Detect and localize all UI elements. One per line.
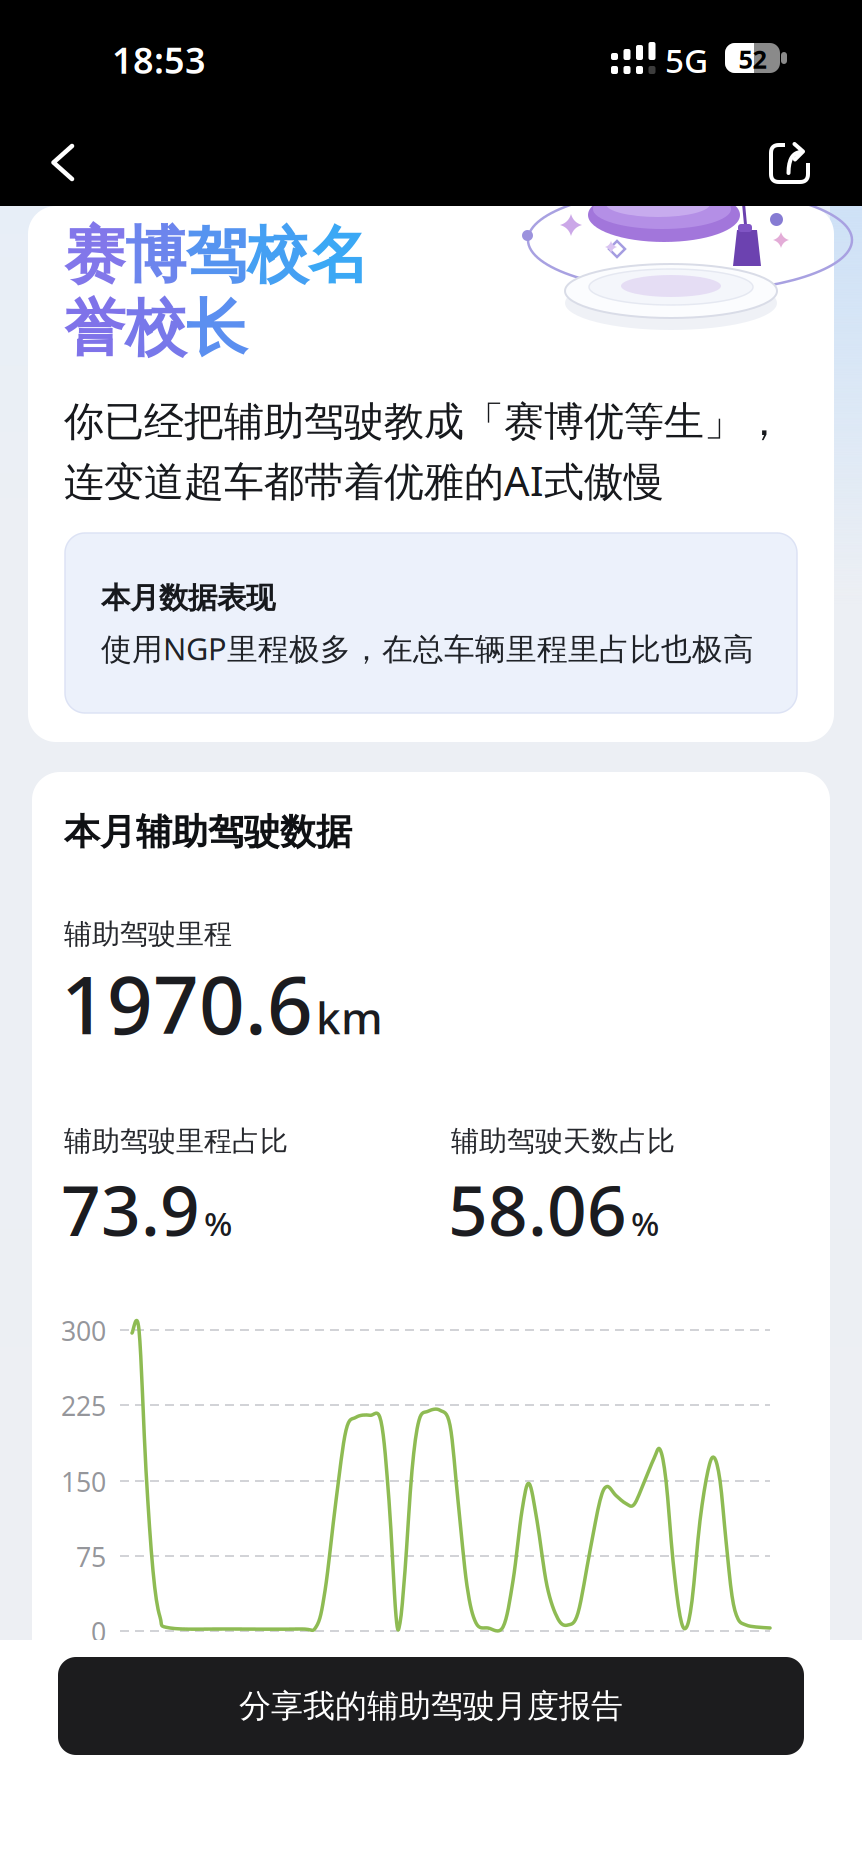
staticText: 名: [308, 218, 369, 293]
button[interactable]: 分享我的辅助驾驶月度报告: [58, 1657, 804, 1755]
staticText: 52: [738, 42, 766, 76]
button[interactable]: Back: [20, 130, 84, 194]
staticText: 本月数据表现: [101, 580, 275, 616]
staticText: 0: [91, 1614, 106, 1649]
staticText: 58.06: [448, 1163, 627, 1255]
staticText: 校: [125, 291, 186, 366]
staticText: 辅助驾驶天数占比: [451, 1124, 675, 1158]
staticText: 18:53: [112, 36, 206, 84]
staticText: 连变道超车都带着优雅的AI式傲慢: [64, 454, 664, 507]
staticText: 赛: [64, 218, 125, 293]
button[interactable]: Share: [758, 132, 822, 196]
staticText: 1970.6: [61, 950, 313, 1056]
staticText: 5G: [665, 38, 708, 82]
staticText: %: [204, 1201, 232, 1245]
staticText: 225: [61, 1388, 106, 1423]
staticText: 誉: [64, 291, 125, 366]
staticText: 300: [61, 1313, 106, 1348]
staticText: 使用NGP里程极多，在总车辆里程里占比也极高: [101, 628, 754, 669]
staticText: 分享我的辅助驾驶月度报告: [239, 1686, 623, 1726]
staticText: %: [631, 1201, 659, 1245]
staticText: 驾: [186, 218, 247, 293]
staticText: 75: [76, 1539, 106, 1574]
staticText: 校: [247, 218, 308, 293]
staticText: 73.9: [61, 1163, 200, 1255]
staticText: 本月辅助驾驶数据: [64, 810, 352, 854]
staticText: 辅助驾驶里程占比: [64, 1124, 288, 1158]
staticText: 150: [61, 1464, 106, 1499]
staticText: 你已经把辅助驾驶教成「赛博优等生」，: [64, 397, 784, 446]
staticText: km: [316, 988, 383, 1046]
staticText: 博: [125, 218, 186, 293]
staticText: 辅助驾驶里程: [64, 917, 232, 951]
staticText: 长: [186, 291, 247, 366]
